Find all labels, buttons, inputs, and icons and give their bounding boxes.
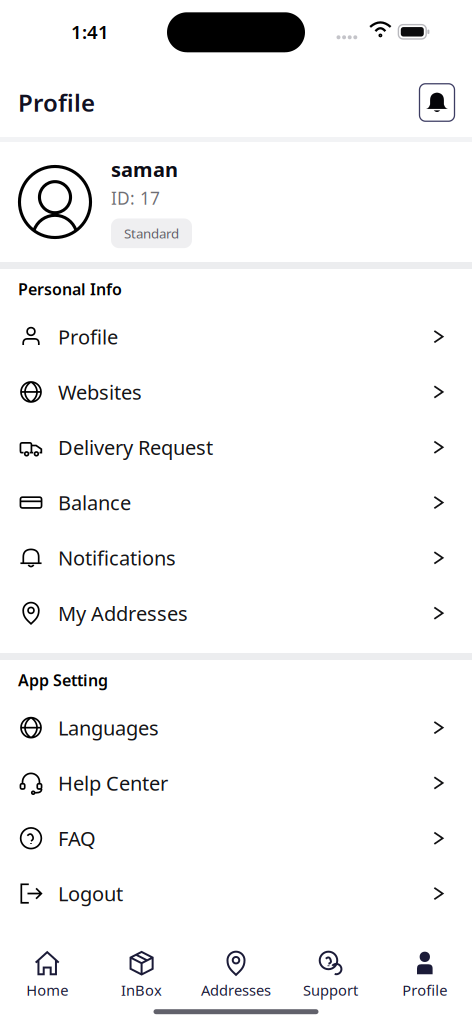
button[interactable]: Websites xyxy=(0,364,472,420)
staticText: Logout xyxy=(58,880,123,907)
staticText: Addresses xyxy=(201,980,271,1000)
staticText: App Setting xyxy=(18,669,108,691)
button[interactable]: Help Center xyxy=(0,755,472,811)
staticText: Personal Info xyxy=(18,278,122,300)
button[interactable]: Profile xyxy=(378,951,472,1009)
staticText: Notifications xyxy=(58,545,176,571)
button[interactable]: Logout xyxy=(0,866,472,921)
staticText: Standard xyxy=(124,224,179,242)
staticText: Home xyxy=(26,980,68,1000)
button[interactable]: My Addresses xyxy=(0,585,472,641)
button[interactable]: Delivery Request xyxy=(0,420,472,475)
staticText: InBox xyxy=(121,980,162,1000)
staticText: Profile xyxy=(58,323,118,350)
staticText: Profile xyxy=(18,87,95,118)
staticText: Websites xyxy=(58,379,142,405)
staticText: My Addresses xyxy=(58,600,188,626)
button[interactable]: Languages xyxy=(0,700,472,755)
staticText: Languages xyxy=(58,714,159,741)
button[interactable]: Addresses xyxy=(189,951,283,1009)
button[interactable]: Home xyxy=(0,951,94,1009)
button[interactable]: Notifications xyxy=(0,530,472,585)
button[interactable]: Balance xyxy=(0,475,472,530)
staticText: FAQ xyxy=(58,825,96,852)
button[interactable]: InBox xyxy=(94,951,189,1009)
staticText: saman xyxy=(111,156,178,182)
button[interactable]: Notifications xyxy=(419,84,454,121)
staticText: Delivery Request xyxy=(58,434,213,461)
staticText: 1:41 xyxy=(71,19,109,44)
button[interactable]: Profile xyxy=(0,309,472,364)
staticText: ID: 17 xyxy=(111,186,160,209)
button[interactable]: Support xyxy=(283,951,378,1009)
staticText: Help Center xyxy=(58,770,168,796)
button[interactable]: FAQ xyxy=(0,811,472,866)
staticText: Balance xyxy=(58,489,131,516)
staticText: Profile xyxy=(402,980,447,1000)
staticText: Support xyxy=(303,980,358,1000)
